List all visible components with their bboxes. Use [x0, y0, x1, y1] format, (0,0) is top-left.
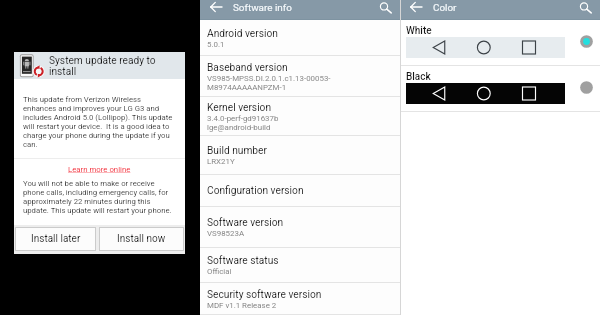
button[interactable]: Learn more online	[68, 165, 131, 174]
button[interactable]: Android version	[200, 20, 400, 56]
button[interactable]: Install now	[100, 228, 183, 250]
button[interactable]: Baseband version	[200, 56, 400, 97]
staticText: Black	[406, 71, 431, 83]
staticText: 3.4.0-perf-gd91637b	[207, 114, 279, 123]
staticText: Install later	[31, 233, 81, 245]
staticText: Install now	[117, 233, 166, 245]
staticText: M8974AAAAANPZM-1	[207, 83, 287, 92]
button[interactable]: Software version	[200, 207, 400, 248]
button[interactable]: Install later	[16, 228, 95, 250]
staticText: Software info	[233, 2, 292, 14]
button[interactable]: Search	[378, 0, 400, 19]
button[interactable]: Back	[200, 0, 229, 19]
button[interactable]: Kernel version	[200, 97, 400, 136]
staticText: You will not be able to make or receive …	[23, 179, 176, 215]
staticText: VS98523A	[207, 229, 245, 238]
staticText: Security software version	[207, 289, 322, 301]
staticText: Kernel version	[207, 102, 272, 114]
button[interactable]: White	[400, 20, 600, 65]
staticText: Configuration version	[207, 185, 304, 197]
button[interactable]: Back	[400, 0, 429, 19]
staticText: Official	[207, 267, 232, 276]
staticText: MDF v1.1 Release 2	[207, 301, 277, 310]
staticText: White	[406, 25, 432, 37]
staticText: This update from Verizon Wireless enhanc…	[23, 95, 176, 149]
button[interactable]: Security software version	[200, 283, 400, 315]
staticText: Android version	[207, 28, 278, 40]
button[interactable]: Build number	[200, 136, 400, 175]
staticText: VS985-MPSS.DI.2.0.1.c1.13-00053-	[207, 74, 331, 83]
staticText: Software version	[207, 217, 284, 229]
button[interactable]: Software status	[200, 248, 400, 283]
staticText: System update ready to install	[49, 55, 161, 78]
staticText: Baseband version	[207, 62, 288, 74]
staticText: Software status	[207, 255, 279, 267]
button[interactable]: Search	[578, 0, 600, 19]
staticText: 5.0.1	[207, 40, 225, 49]
staticText: LRX21Y	[207, 157, 235, 166]
staticText: Build number	[207, 145, 267, 157]
staticText: lge@android-build	[207, 123, 271, 132]
button[interactable]: Configuration version	[200, 175, 400, 207]
button[interactable]: Black	[400, 66, 600, 111]
staticText: Color	[433, 2, 457, 14]
